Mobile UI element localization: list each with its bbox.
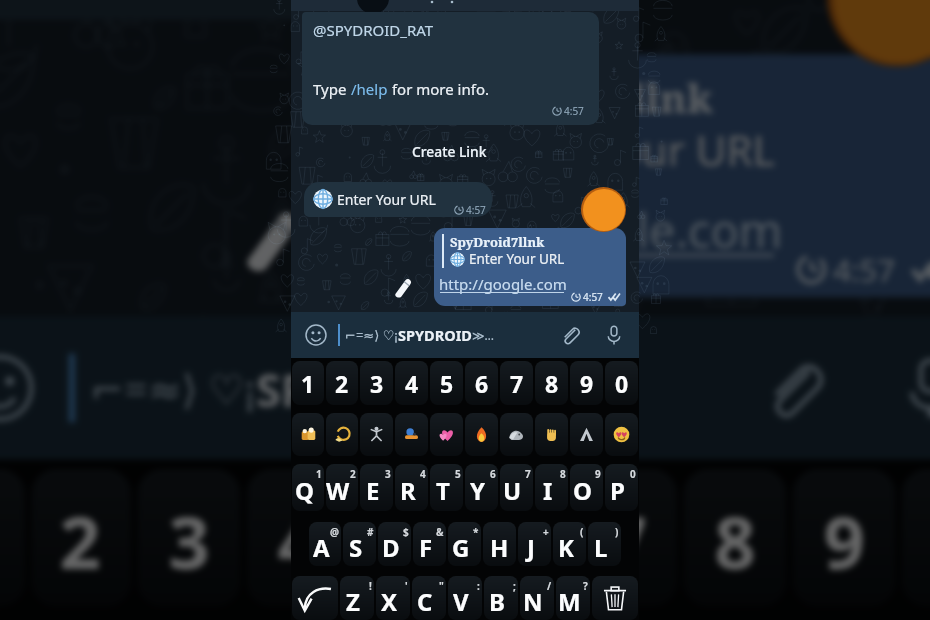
button[interactable]: 3 (137, 469, 240, 606)
button[interactable]: Emoji (0, 354, 34, 422)
button[interactable]: 7 (500, 361, 533, 405)
staticText: ) (615, 525, 619, 539)
button[interactable]: 2 (326, 361, 358, 405)
button[interactable]: @SPYDROID_RAT (302, 12, 599, 125)
staticText: O (573, 474, 592, 507)
button[interactable]: 1 (292, 361, 324, 405)
button[interactable]: 4 (395, 361, 428, 405)
staticText: W (326, 474, 350, 507)
button[interactable]: 9 (793, 469, 896, 606)
staticText: 0 (630, 467, 636, 481)
button[interactable]: X (376, 576, 410, 620)
button[interactable]: Emoji 2 (326, 413, 358, 456)
button[interactable]: R (395, 464, 428, 511)
button[interactable]: K (553, 522, 586, 566)
button[interactable]: Emoji 6 (465, 413, 498, 456)
button[interactable]: Emoji 5 (430, 413, 463, 456)
button[interactable]: 5 (430, 361, 463, 405)
staticText: 4:57 (468, 0, 530, 20)
button[interactable]: Emoji 8 (535, 413, 568, 456)
button[interactable]: J (518, 522, 551, 566)
staticText: 1 (301, 368, 315, 399)
button[interactable]: T (430, 464, 463, 511)
button[interactable]: 7 (574, 469, 677, 606)
button[interactable]: L (588, 522, 621, 566)
button[interactable]: Attach (559, 324, 581, 346)
button[interactable]: Attach (758, 354, 827, 422)
button[interactable]: Send (827, 0, 930, 67)
button[interactable]: W (326, 464, 358, 511)
button[interactable]: P (605, 464, 638, 511)
button[interactable]: Voice message (896, 354, 930, 422)
button[interactable]: 6 (465, 361, 498, 405)
button[interactable]: S (343, 522, 376, 566)
button[interactable]: Enter Your URL (0, 0, 549, 20)
button[interactable]: Emoji (305, 324, 327, 346)
staticText: H (490, 531, 509, 564)
button[interactable]: C (412, 576, 446, 620)
button[interactable]: Send (581, 187, 626, 232)
staticText: " (439, 579, 444, 593)
button[interactable]: Emoji 4 (395, 413, 428, 456)
button[interactable]: Emoji 9 (570, 413, 603, 456)
staticText: R (400, 474, 416, 507)
button[interactable]: Emoji 7 (500, 413, 533, 456)
staticText: http://google.com (384, 198, 783, 260)
button[interactable]: 2 (31, 469, 131, 606)
button[interactable]: H (483, 522, 516, 566)
button[interactable]: I (535, 464, 568, 511)
staticText: 5 (440, 368, 454, 399)
button[interactable]: U (500, 464, 533, 511)
button[interactable]: Enter (292, 576, 338, 620)
button[interactable]: M (556, 576, 590, 620)
button[interactable]: 4 (247, 469, 350, 606)
button[interactable]: E (360, 464, 393, 511)
button[interactable]: 6 (465, 469, 568, 606)
staticText: ( (580, 525, 584, 539)
staticText: : (477, 579, 480, 593)
button[interactable]: N (520, 576, 554, 620)
button[interactable]: 5 (356, 469, 459, 606)
button[interactable]: 9 (570, 361, 603, 405)
button[interactable]: 8 (683, 469, 786, 606)
button[interactable]: D (378, 522, 411, 566)
button[interactable]: Z (340, 576, 374, 620)
staticText: 4:57 (833, 248, 896, 291)
button[interactable]: G (448, 522, 481, 566)
button[interactable]: Create Link (404, 140, 495, 163)
staticText: 5 (387, 491, 431, 588)
staticText: Q (295, 474, 314, 507)
button[interactable]: 8 (535, 361, 568, 405)
button[interactable]: F (413, 522, 446, 566)
button[interactable]: 3 (360, 361, 393, 405)
button[interactable]: B (484, 576, 518, 620)
staticText: 8 (560, 467, 566, 481)
button[interactable]: SpyDroid7llnk (368, 54, 930, 298)
button[interactable]: Emoji 1 (292, 413, 324, 456)
staticText: 4 (405, 368, 419, 399)
button[interactable]: Y (465, 464, 498, 511)
staticText: 6 (496, 491, 540, 588)
staticText: ' (405, 579, 408, 593)
button[interactable]: Delete (592, 576, 638, 620)
button[interactable]: Q (292, 464, 324, 511)
button[interactable]: A (309, 522, 341, 566)
button[interactable]: V (448, 576, 482, 620)
button[interactable]: 0 (605, 361, 638, 405)
staticText: # (367, 525, 374, 539)
button[interactable]: Emoji 3 (360, 413, 393, 456)
staticText: 3 (370, 368, 384, 399)
staticText: for more info. (388, 79, 489, 99)
staticText: L (594, 531, 608, 564)
button[interactable]: Voice message (603, 324, 625, 346)
button[interactable]: Enter Your URL (304, 182, 492, 217)
button[interactable]: SpyDroid7llnk (434, 228, 626, 306)
staticText: A (313, 531, 330, 564)
button[interactable]: Emoji 10 (605, 413, 638, 456)
staticText: S (349, 531, 363, 564)
staticText: 4 (420, 467, 426, 481)
button[interactable]: O (570, 464, 603, 511)
staticText: ≫… (487, 363, 559, 413)
